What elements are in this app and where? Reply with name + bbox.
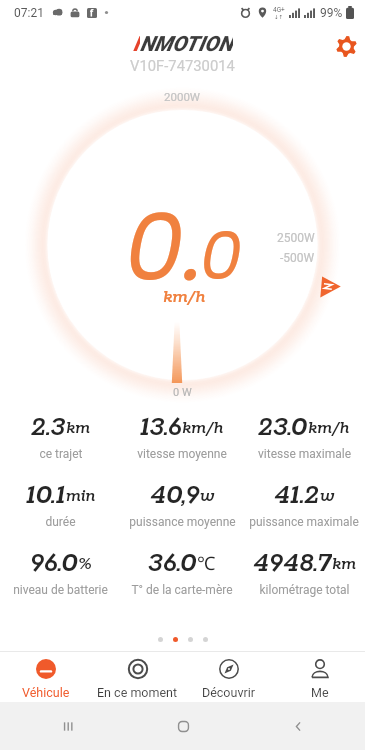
staticText: NMOTION <box>140 32 233 54</box>
staticText: ℃ <box>197 550 216 575</box>
staticText: Me <box>311 685 329 700</box>
staticText: kilométrage total <box>259 583 350 597</box>
staticText: km/h <box>163 286 206 308</box>
staticText: 99% <box>320 6 343 20</box>
staticText: 23.0 <box>258 410 308 440</box>
staticText: vitesse moyenne <box>137 447 227 461</box>
staticText: km <box>332 554 356 575</box>
staticText: Découvrir <box>202 685 255 700</box>
staticText: 10.1 <box>26 478 66 508</box>
button[interactable]: Véhicule <box>0 651 92 702</box>
button[interactable]: Home <box>170 713 196 739</box>
staticText: puissance maximale <box>249 515 359 529</box>
staticText: durée <box>45 515 76 529</box>
staticText: 41.2 <box>274 478 320 508</box>
staticText: 4948.7 <box>253 546 332 576</box>
staticText: w <box>200 486 215 507</box>
staticText: w <box>320 486 335 507</box>
staticText: 0 W <box>173 386 192 399</box>
staticText: km/h <box>182 418 224 439</box>
button[interactable]: En ce moment <box>92 651 183 702</box>
staticText: Véhicule <box>22 685 70 700</box>
staticText: vitesse maximale <box>258 447 351 461</box>
staticText: 0 <box>200 209 243 303</box>
staticText: 96.0 <box>30 546 78 576</box>
staticText: 07:21 <box>14 6 44 20</box>
staticText: km/h <box>308 418 350 439</box>
staticText: V10F-74730014 <box>130 57 235 74</box>
staticText: T° de la carte-mère <box>131 583 233 597</box>
staticText: ce trajet <box>39 447 83 461</box>
staticText: 36.0 <box>148 546 197 576</box>
button[interactable]: Settings <box>333 33 359 59</box>
button[interactable]: Back <box>285 713 311 739</box>
staticText: 4G+ <box>273 6 285 14</box>
staticText: I <box>133 32 140 54</box>
staticText: ↓↑ <box>274 14 284 20</box>
staticText: puissance moyenne <box>129 515 236 529</box>
staticText: % <box>78 554 92 575</box>
staticText: 40,9 <box>150 478 200 508</box>
staticText: min <box>66 486 96 507</box>
staticText: niveau de batterie <box>13 583 108 597</box>
button[interactable]: Me <box>274 651 365 702</box>
staticText: 2000W <box>164 90 201 103</box>
staticText: En ce moment <box>97 685 178 700</box>
button[interactable]: Découvrir <box>183 651 274 702</box>
staticText: -500W <box>280 251 315 265</box>
staticText: 2.3 <box>31 410 66 440</box>
staticText: 2500W <box>277 231 315 245</box>
staticText: f <box>90 8 94 18</box>
staticText: 0. <box>125 181 204 313</box>
staticText: 13.6 <box>140 410 182 440</box>
staticText: km <box>66 418 90 439</box>
button[interactable]: Recent apps <box>54 713 80 739</box>
